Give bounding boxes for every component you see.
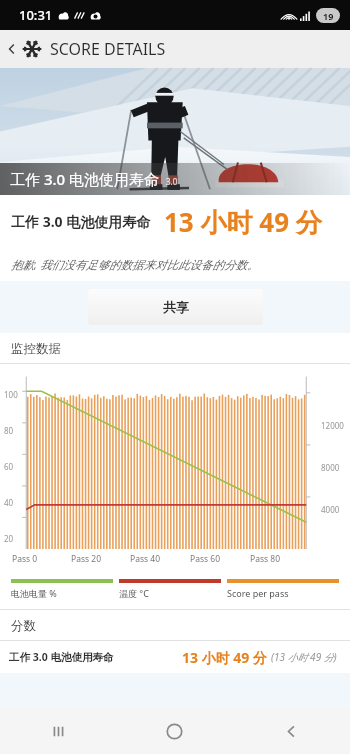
staticText: 工作 3.0 电池使用寿命 [9, 650, 114, 664]
button[interactable]: Back [2, 39, 22, 59]
staticText: Pass 40 [130, 553, 160, 565]
staticText: 监控数据 [11, 341, 61, 357]
staticText: 80 [4, 425, 14, 436]
staticText: SCORE DETAILS [50, 38, 166, 60]
staticText: 13 小时 49 分 [164, 204, 322, 240]
button[interactable]: Home [116, 708, 233, 754]
staticText: 8000 [321, 462, 340, 473]
staticText: 19 [323, 10, 334, 22]
staticText: 12000 [321, 420, 344, 431]
staticText: 共享 [163, 299, 189, 315]
staticText: 抱歉, 我们没有足够的数据来对比此设备的分数。 [11, 257, 259, 273]
staticText: 10:31 [19, 6, 53, 24]
staticText: 工作 3.0 电池使用寿命 [11, 212, 151, 231]
button[interactable]: Recent apps [0, 708, 116, 754]
staticText: Pass 60 [190, 553, 220, 565]
staticText: 4000 [321, 504, 340, 515]
staticText: 工作 3.0 电池使用寿命 [10, 169, 160, 189]
staticText: 20 [4, 533, 14, 544]
staticText: Pass 80 [250, 553, 280, 565]
button[interactable]: 共享 [88, 289, 263, 325]
staticText: 分数 [11, 618, 36, 634]
staticText: Pass 20 [71, 553, 101, 565]
staticText: 3.0 [166, 176, 178, 187]
staticText: 100 [4, 389, 18, 400]
staticText: (13 小时 49 分) [271, 650, 337, 664]
staticText: 13 小时 49 分 [182, 648, 267, 667]
button[interactable]: Back [233, 708, 350, 754]
staticText: Pass 0 [12, 553, 38, 565]
staticText: 电池电量 % [11, 587, 57, 599]
staticText: 温度 °C [119, 587, 149, 599]
staticText: Score per pass [227, 587, 289, 599]
staticText: 40 [4, 497, 14, 508]
staticText: 60 [4, 461, 14, 472]
